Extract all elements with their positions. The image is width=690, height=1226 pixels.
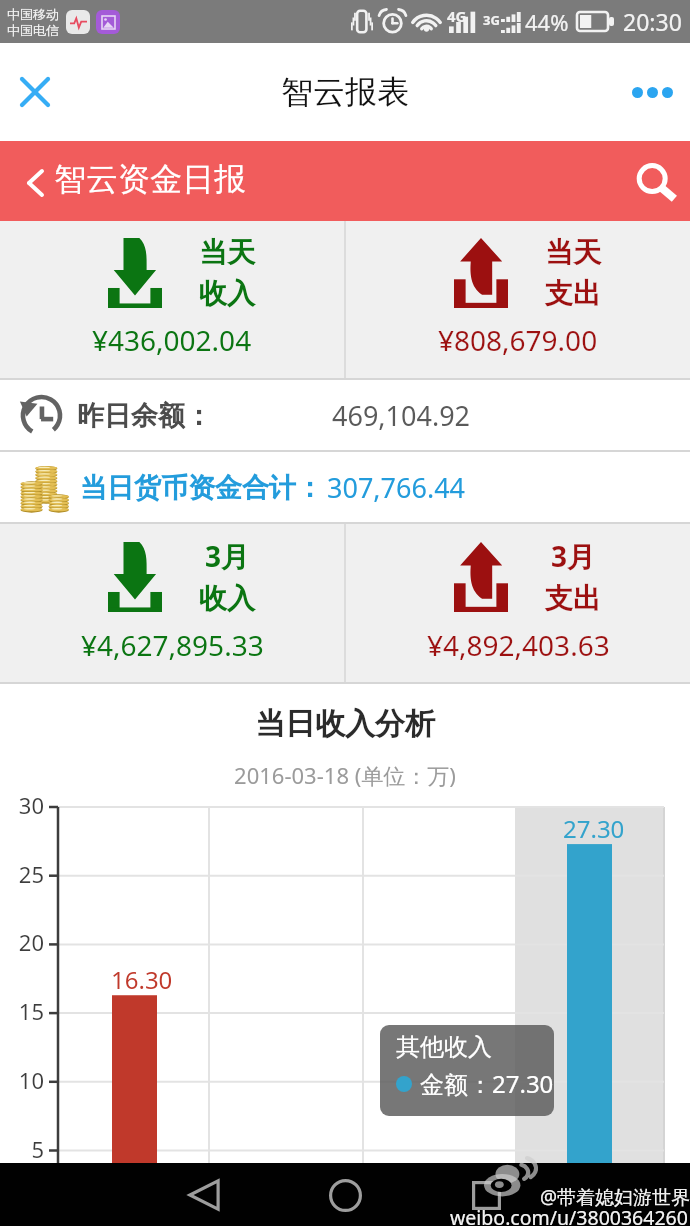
staticText: 支出 <box>545 581 601 616</box>
staticText: @带着媳妇游世界 <box>540 1184 690 1210</box>
staticText: 25 <box>0 859 44 889</box>
staticText: 3月 <box>551 537 596 575</box>
staticText: 307,766.44 <box>327 469 466 506</box>
button[interactable]: 当天 <box>0 221 344 378</box>
staticText: 5 <box>0 1134 44 1164</box>
button[interactable]: More options <box>623 63 681 121</box>
staticText: 其他收入 <box>396 1032 492 1062</box>
button[interactable]: 智云资金日报 <box>0 141 690 221</box>
staticText: 中国移动 <box>7 6 59 22</box>
staticText: 支出 <box>545 276 601 311</box>
staticText: 金额：27.30 <box>420 1067 554 1100</box>
staticText: 15 <box>0 996 44 1026</box>
button[interactable]: Recents <box>456 1165 516 1225</box>
staticText: 当天 <box>545 235 601 270</box>
button[interactable]: 当天 <box>346 221 690 378</box>
staticText: 16.30 <box>111 963 173 996</box>
staticText: 当日收入分析 <box>0 705 690 743</box>
staticText: 中国电信 <box>7 22 59 38</box>
button[interactable]: Search <box>631 153 687 209</box>
button[interactable]: 当日货币资金合计： <box>0 452 690 522</box>
staticText: 收入 <box>199 581 255 616</box>
staticText: 3G <box>483 11 500 29</box>
button[interactable]: Close <box>6 63 64 121</box>
button[interactable]: Back <box>174 1165 234 1225</box>
staticText: ¥436,002.04 <box>92 321 252 359</box>
staticText: ¥808,679.00 <box>438 321 598 359</box>
button[interactable]: 3月 <box>0 524 344 682</box>
staticText: 智云报表 <box>281 72 409 112</box>
staticText: 3月 <box>205 537 250 575</box>
staticText: weibo.com/u/3800364260 <box>450 1204 688 1226</box>
staticText: 4G <box>447 6 467 26</box>
staticText: 当天 <box>199 235 255 270</box>
staticText: 智云资金日报 <box>54 159 246 199</box>
staticText: 昨日余额： <box>77 399 212 433</box>
button[interactable]: 昨日余额： <box>0 380 690 450</box>
staticText: 469,104.92 <box>332 397 471 434</box>
staticText: 10 <box>0 1065 44 1095</box>
button[interactable]: Home <box>315 1165 375 1225</box>
staticText: 当日货币资金合计： <box>80 471 323 505</box>
staticText: 44% <box>525 7 569 37</box>
staticText: 2016-03-18 (单位：万) <box>0 760 690 790</box>
staticText: 20 <box>0 927 44 957</box>
staticText: 30 <box>0 790 44 820</box>
button[interactable]: 3月 <box>346 524 690 682</box>
staticText: 20:30 <box>623 6 682 37</box>
staticText: ¥4,627,895.33 <box>81 626 264 664</box>
staticText: ¥4,892,403.63 <box>427 626 610 664</box>
staticText: 收入 <box>199 276 255 311</box>
staticText: 27.30 <box>563 812 625 845</box>
